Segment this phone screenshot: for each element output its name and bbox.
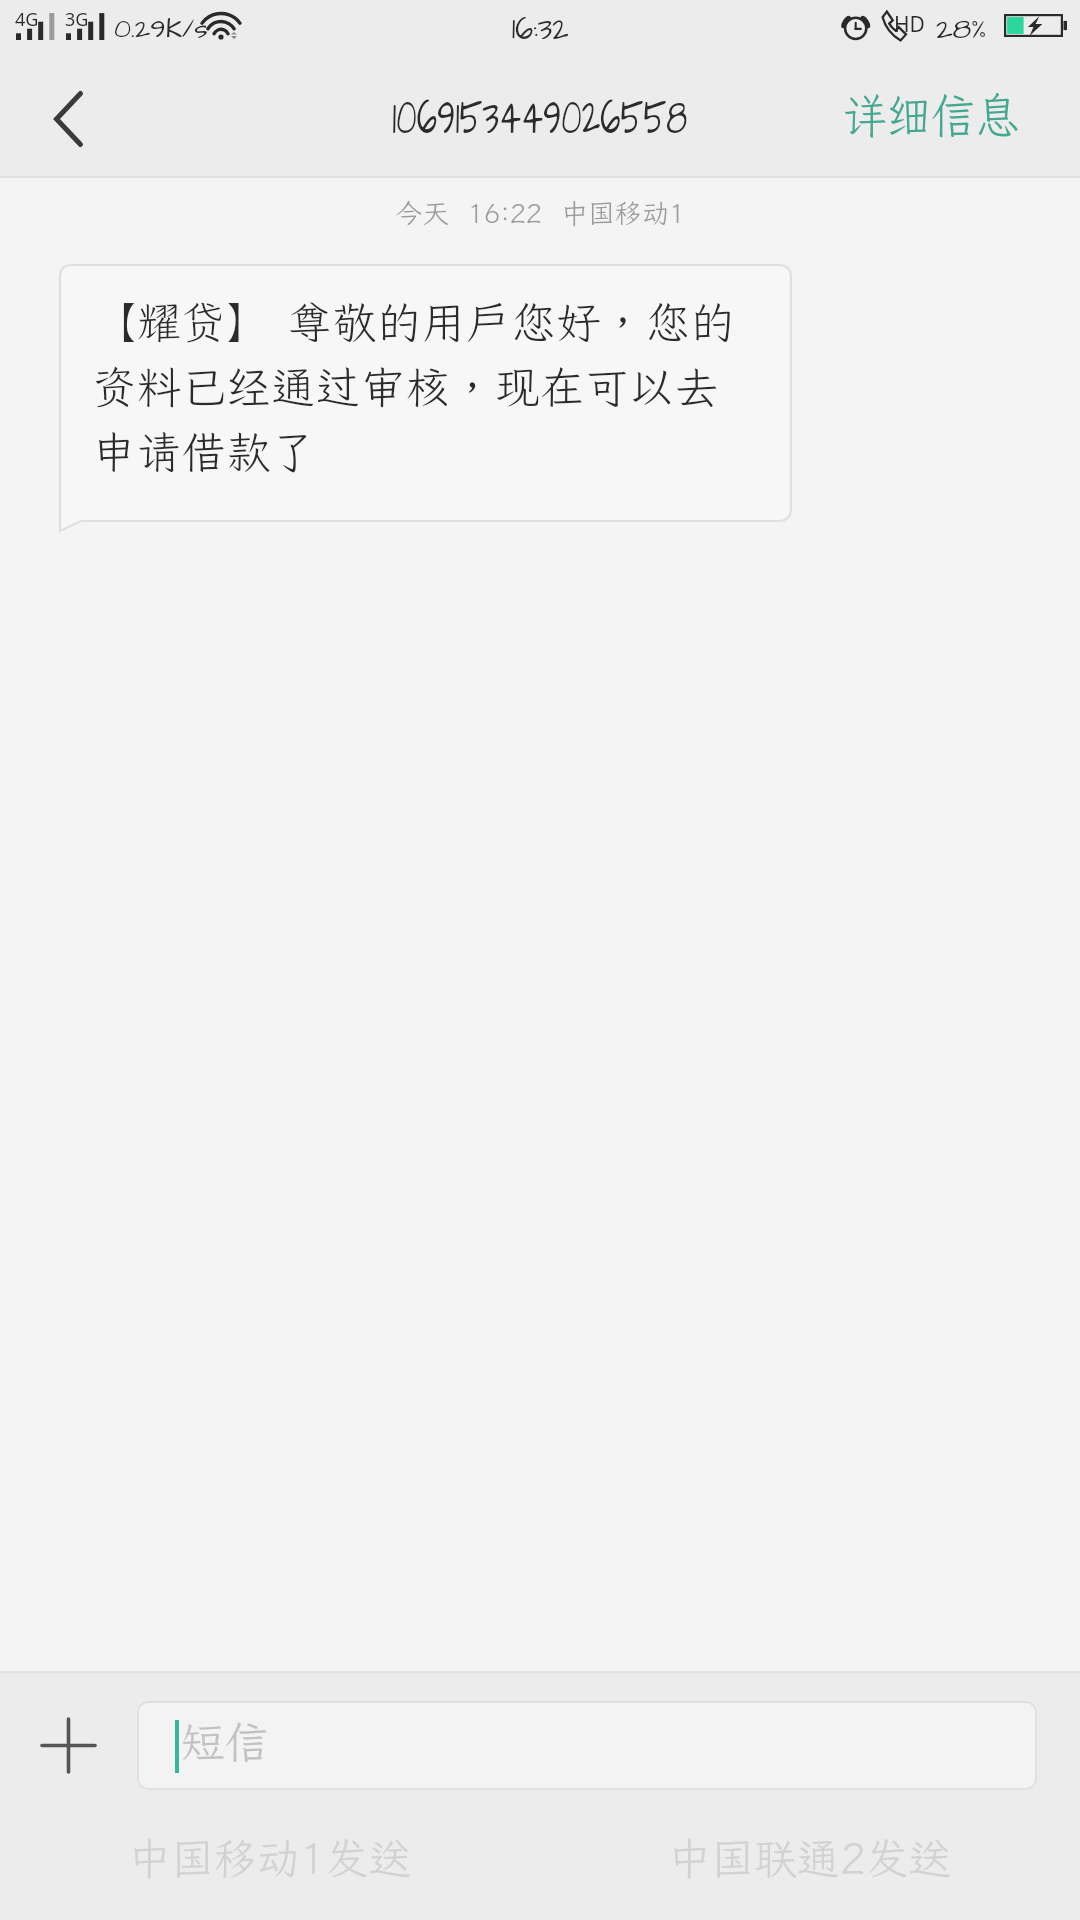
staticText: 详细信息 bbox=[842, 84, 1021, 147]
staticText: 16:32 bbox=[512, 6, 569, 52]
button[interactable]: 短信 bbox=[137, 1701, 1037, 1790]
staticText: 0.29K/s bbox=[114, 10, 208, 48]
button[interactable]: 【耀贷】 尊敬的用户您好，您的资料已经通过审核，现在可以去申请借款了 bbox=[59, 264, 792, 532]
staticText: 28% bbox=[936, 9, 987, 49]
staticText: HD bbox=[894, 10, 925, 39]
staticText: 中国联通2发送 bbox=[668, 1830, 952, 1887]
button[interactable]: Back bbox=[0, 60, 137, 178]
button[interactable]: 详细信息 bbox=[813, 60, 1080, 178]
staticText: 1069153449026558 bbox=[392, 84, 688, 154]
button[interactable]: Add attachment bbox=[0, 1701, 137, 1790]
staticText: 【耀贷】 尊敬的用户您好，您的资料已经通过审核，现在可以去申请借款了 bbox=[92, 293, 763, 480]
staticText: 4G bbox=[15, 7, 39, 32]
staticText: 短信 bbox=[181, 1713, 269, 1771]
staticText: 3G bbox=[65, 7, 89, 32]
button[interactable]: 中国联通2发送 bbox=[540, 1790, 1080, 1920]
staticText: 今天 16:22 中国移动1 bbox=[0, 195, 1080, 231]
button[interactable]: 中国移动1发送 bbox=[0, 1790, 540, 1920]
staticText: 中国移动1发送 bbox=[128, 1830, 412, 1887]
